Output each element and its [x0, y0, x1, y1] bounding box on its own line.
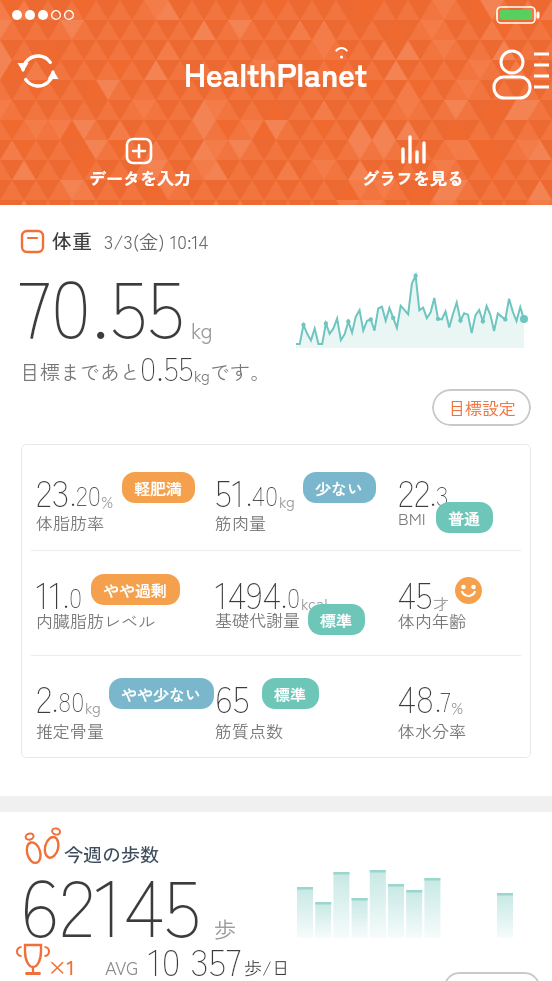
- staticText: データを入力: [89, 165, 191, 190]
- staticText: 少ない: [315, 476, 364, 499]
- staticText: .7: [435, 682, 451, 720]
- staticText: グラフを見る: [362, 165, 464, 190]
- staticText: 歩: [214, 912, 237, 944]
- staticText: 0.55: [140, 344, 194, 390]
- staticText: 51: [215, 465, 246, 517]
- staticText: 標準: [274, 682, 307, 705]
- staticText: 歩/日: [244, 954, 290, 980]
- staticText: 体脂肪率: [36, 510, 104, 535]
- staticText: .80: [52, 682, 85, 720]
- staticText: kg: [85, 695, 101, 718]
- staticText: やや少ない: [121, 682, 202, 705]
- button[interactable]: グラフを見る: [313, 130, 513, 196]
- staticText: 11: [36, 567, 63, 619]
- staticText: BMI: [398, 505, 426, 530]
- staticText: .0: [63, 578, 83, 616]
- staticText: 体内年齢: [398, 608, 466, 633]
- staticText: 体水分率: [398, 718, 466, 743]
- staticText: 軽肥満: [134, 476, 183, 499]
- staticText: 才: [433, 591, 450, 614]
- staticText: 筋肉量: [215, 510, 266, 535]
- staticText: .3: [430, 476, 449, 514]
- staticText: kg: [191, 313, 213, 345]
- staticText: 3/3(金) 10:14: [104, 227, 209, 255]
- staticText: 目標まであと: [20, 357, 140, 386]
- staticText: 推定骨量: [36, 718, 104, 743]
- staticText: kg: [279, 489, 295, 512]
- staticText: 22: [398, 465, 430, 517]
- staticText: 基礎代謝量: [215, 607, 300, 632]
- staticText: 2: [36, 671, 52, 723]
- staticText: 10 357: [148, 933, 242, 981]
- staticText: 内臓脂肪レベル: [36, 608, 155, 633]
- staticText: kcal: [301, 591, 328, 614]
- staticText: 体重: [52, 226, 92, 255]
- staticText: 1494: [215, 567, 281, 619]
- staticText: 普通: [448, 506, 481, 529]
- staticText: やや過剰: [103, 578, 168, 601]
- staticText: HealthPlanet: [184, 50, 368, 96]
- staticText: 70.55: [18, 245, 185, 361]
- staticText: kg: [194, 363, 210, 386]
- staticText: .20: [70, 476, 101, 514]
- button[interactable]: データを入力: [40, 130, 240, 196]
- staticText: .40: [246, 476, 279, 514]
- staticText: 筋質点数: [215, 718, 283, 743]
- button[interactable]: 目標設定: [432, 389, 531, 426]
- staticText: %: [451, 695, 464, 718]
- staticText: .0: [281, 578, 301, 616]
- staticText: 目標設定: [448, 395, 516, 420]
- button[interactable]: [444, 972, 540, 981]
- staticText: です。: [210, 357, 270, 386]
- staticText: 48: [398, 671, 435, 723]
- staticText: AVG: [105, 954, 139, 980]
- staticText: %: [101, 489, 114, 512]
- staticText: 45: [398, 567, 433, 619]
- staticText: 23: [36, 465, 70, 517]
- staticText: 62145: [20, 844, 202, 960]
- staticText: 標準: [320, 608, 353, 631]
- staticText: ×1: [48, 951, 75, 981]
- staticText: 65: [215, 671, 250, 723]
- staticText: 今週の歩数: [64, 840, 160, 868]
